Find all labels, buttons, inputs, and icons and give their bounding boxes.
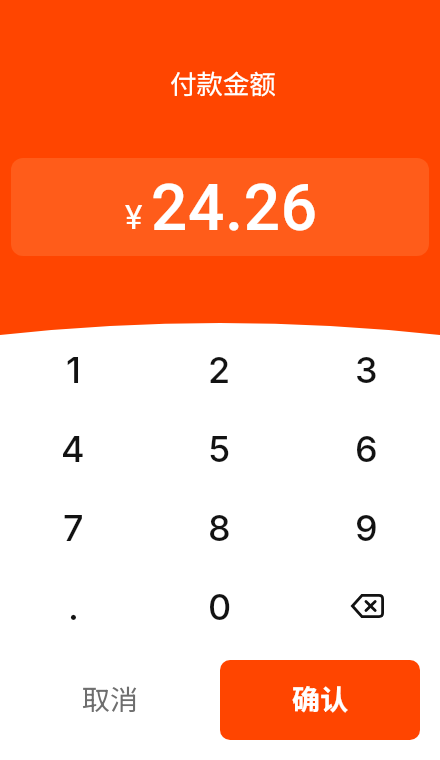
staticText: 9 <box>355 506 378 550</box>
button[interactable]: 1 <box>0 330 146 409</box>
staticText: 付款金额 <box>3 63 440 101</box>
button[interactable]: . <box>0 567 146 646</box>
staticText: . <box>68 585 79 629</box>
staticText: 6 <box>355 427 378 471</box>
staticText: 3 <box>355 348 378 392</box>
button[interactable]: 确认 <box>220 660 420 740</box>
staticText: 24.26 <box>151 171 318 246</box>
button[interactable]: 0 <box>146 567 293 646</box>
staticText: ¥ <box>125 198 143 237</box>
staticText: 2 <box>208 348 231 392</box>
staticText: 8 <box>208 506 231 550</box>
button[interactable]: 5 <box>146 409 293 488</box>
staticText: 确认 <box>292 678 349 719</box>
button[interactable]: 7 <box>0 488 146 567</box>
staticText: 7 <box>63 506 84 550</box>
staticText: 5 <box>208 427 231 471</box>
button[interactable]: 2 <box>146 330 293 409</box>
staticText: 0 <box>208 585 232 629</box>
button[interactable]: 9 <box>293 488 440 567</box>
staticText: 1 <box>66 348 81 392</box>
button[interactable]: Backspace <box>293 567 440 646</box>
button[interactable]: 3 <box>293 330 440 409</box>
button[interactable]: 4 <box>0 409 146 488</box>
button[interactable]: 6 <box>293 409 440 488</box>
button[interactable]: 取消 <box>0 660 220 740</box>
staticText: 4 <box>61 427 85 471</box>
staticText: 取消 <box>82 678 139 719</box>
button[interactable]: 8 <box>146 488 293 567</box>
